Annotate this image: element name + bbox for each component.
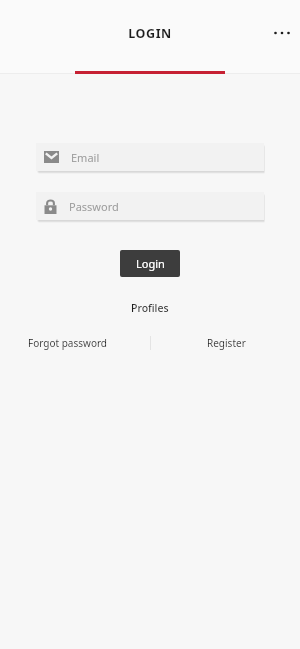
staticText: Email <box>71 150 100 165</box>
button[interactable]: Register <box>195 332 258 354</box>
staticText: Register <box>207 336 246 350</box>
staticText: LOGIN <box>128 25 172 42</box>
staticText: Password <box>69 199 119 214</box>
button[interactable]: Password <box>36 192 264 220</box>
button[interactable]: More options <box>264 15 300 51</box>
button[interactable]: Login <box>120 250 180 277</box>
button[interactable]: Email <box>36 143 264 171</box>
button[interactable]: Forgot password <box>16 332 120 354</box>
button[interactable]: Profiles <box>121 297 179 319</box>
staticText: Forgot password <box>28 336 108 350</box>
staticText: Login <box>136 256 165 271</box>
staticText: Profiles <box>131 301 169 315</box>
